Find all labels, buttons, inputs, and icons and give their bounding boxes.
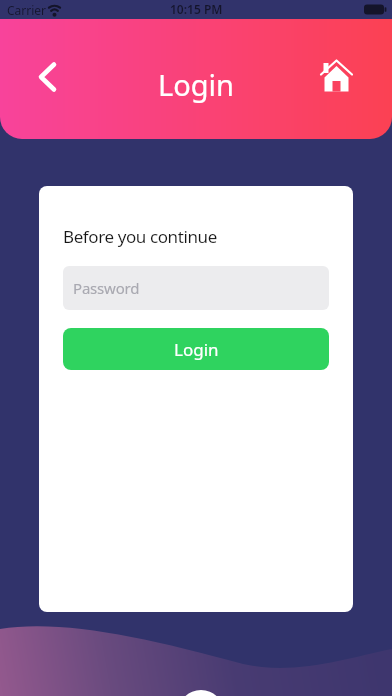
staticText: Login	[174, 338, 219, 361]
button[interactable]	[26, 57, 70, 101]
staticText: Login	[158, 65, 234, 104]
staticText: Password	[73, 278, 140, 298]
button[interactable]: Login	[63, 328, 329, 370]
button[interactable]: Password	[63, 266, 329, 310]
staticText: Before you continue	[63, 225, 217, 248]
button[interactable]	[314, 57, 358, 101]
staticText: 10:15 PM	[170, 1, 223, 17]
staticText: Carrier	[7, 2, 47, 18]
